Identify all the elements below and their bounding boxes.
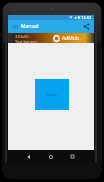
staticText: 320x50 Test banner	[15, 34, 38, 44]
staticText: Ready	[47, 92, 58, 97]
button[interactable]: Recent apps	[65, 150, 79, 163]
staticText: Manual	[21, 23, 39, 30]
button[interactable]: Share	[80, 20, 93, 33]
staticText: AdMob	[62, 35, 79, 42]
button[interactable]: Back	[21, 150, 35, 163]
button[interactable]: Ready	[35, 79, 69, 110]
staticText: 12:02	[81, 15, 92, 20]
button[interactable]: Home	[44, 150, 58, 163]
button[interactable]: Menu	[10, 21, 21, 32]
staticText: .com	[78, 37, 84, 41]
button[interactable]: 320x50 Test banner	[8, 33, 94, 43]
